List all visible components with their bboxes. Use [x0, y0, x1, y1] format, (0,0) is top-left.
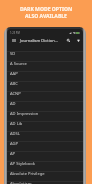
staticText: ADSL: [10, 131, 20, 137]
staticText: 5D: [10, 51, 16, 57]
staticText: Absolute Privilege: [10, 171, 45, 177]
button[interactable]: Absolutism: [7, 181, 83, 184]
button[interactable]: AAP: [7, 71, 83, 81]
button[interactable]: AD Lib: [7, 121, 83, 131]
button[interactable]: ABC: [7, 81, 83, 91]
button[interactable]: Menu: [9, 36, 18, 45]
button[interactable]: A Source: [7, 61, 83, 71]
button[interactable]: AD: [7, 101, 83, 111]
staticText: Journalism Diction...: [20, 38, 59, 44]
staticText: AP: [10, 151, 16, 157]
button[interactable]: Absolute Privilege: [7, 171, 83, 181]
button[interactable]: Search: [64, 36, 72, 44]
staticText: AD: [10, 101, 16, 107]
button[interactable]: AGP: [7, 141, 83, 151]
button[interactable]: ADSL: [7, 131, 83, 141]
button[interactable]: AP: [7, 151, 83, 161]
staticText: 1:25 PM: [10, 31, 20, 35]
button[interactable]: ACNP: [7, 91, 83, 101]
staticText: ABC: [10, 81, 18, 87]
staticText: AD Impression: [10, 111, 39, 117]
staticText: AD Lib: [10, 121, 23, 127]
staticText: AP Stylebook: [10, 161, 35, 167]
staticText: ALSO AVAILABLE: [0, 13, 92, 20]
button[interactable]: AD Impression: [7, 111, 83, 121]
staticText: A Source: [10, 61, 27, 67]
button[interactable]: 5D: [7, 51, 83, 61]
staticText: ACNP: [10, 91, 21, 97]
button[interactable]: AP Stylebook: [7, 161, 83, 171]
staticText: AAP: [10, 71, 18, 77]
button[interactable]: Favorites: [74, 36, 82, 44]
staticText: AGP: [10, 141, 18, 147]
staticText: DARK MODE OPTION: [0, 6, 92, 13]
staticText: Absolutism: [10, 181, 32, 184]
